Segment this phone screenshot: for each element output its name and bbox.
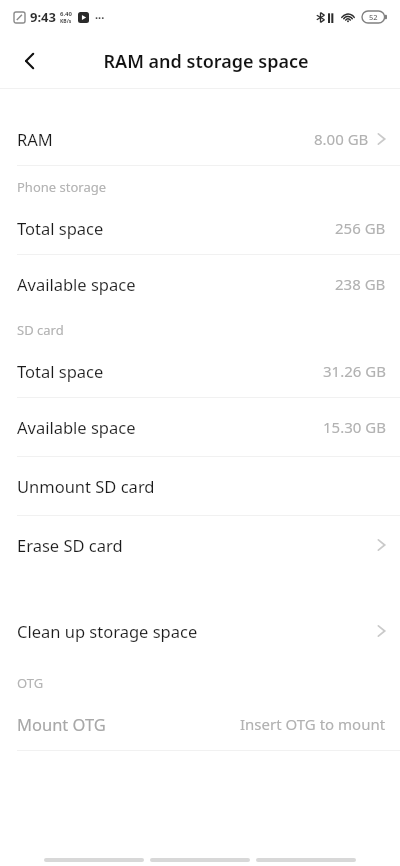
staticText: SD card (17, 321, 64, 339)
button[interactable]: Available space (0, 255, 400, 313)
button[interactable]: Available space (0, 398, 400, 456)
staticText: RAM (17, 128, 53, 150)
staticText: Mount OTG (17, 713, 106, 735)
staticText: 6.40 (60, 10, 72, 18)
button[interactable]: Total space (0, 202, 400, 254)
staticText: Available space (17, 416, 136, 438)
staticText: 9:43 (30, 8, 56, 26)
staticText: Total space (17, 217, 104, 239)
staticText: 238 GB (335, 274, 386, 294)
staticText: ··· (95, 10, 105, 25)
staticText: Insert OTG to mount (240, 714, 386, 734)
staticText: 8.00 GB (314, 129, 369, 149)
button[interactable]: RAM (0, 113, 400, 165)
staticText: 15.30 GB (323, 417, 386, 437)
staticText: 52 (369, 12, 378, 22)
button[interactable]: Erase SD card (0, 516, 400, 574)
staticText: Available space (17, 273, 136, 295)
button[interactable]: Clean up storage space (0, 602, 400, 660)
staticText: Total space (17, 360, 104, 382)
staticText: 256 GB (335, 218, 386, 238)
button[interactable]: Total space (0, 345, 400, 397)
staticText: 31.26 GB (323, 361, 386, 381)
staticText: Clean up storage space (17, 620, 198, 642)
staticText: OTG (17, 674, 44, 692)
button[interactable]: Unmount SD card (0, 457, 400, 515)
staticText: RAM and storage space (103, 49, 309, 74)
staticText: KB/s (60, 18, 72, 25)
button[interactable]: Back (8, 39, 52, 83)
staticText: Phone storage (17, 178, 107, 196)
button[interactable]: Mount OTG (0, 698, 400, 750)
staticText: Erase SD card (17, 534, 123, 556)
staticText: Unmount SD card (17, 475, 155, 497)
